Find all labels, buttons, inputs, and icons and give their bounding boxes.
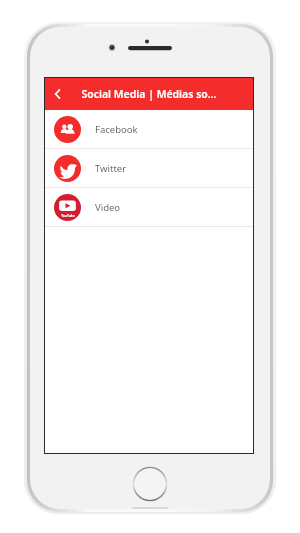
button[interactable]: Facebook (45, 110, 253, 148)
staticText: Twitter (95, 162, 127, 175)
button[interactable]: YouTube (45, 188, 253, 226)
staticText: YouTube (61, 214, 75, 218)
staticText: Social Media | Médias so… (81, 87, 217, 101)
staticText: Facebook (95, 123, 138, 136)
button[interactable]: Twitter (45, 149, 253, 187)
button[interactable]: Back (45, 78, 71, 110)
staticText: Video (95, 201, 121, 214)
